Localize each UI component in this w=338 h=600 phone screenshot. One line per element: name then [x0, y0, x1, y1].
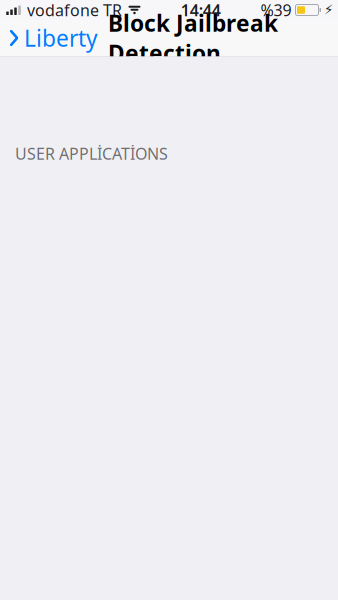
staticText: USER APPLİCATİONS [15, 143, 168, 164]
staticText: vodafone TR [27, 0, 122, 21]
staticText: Liberty [24, 23, 98, 53]
staticText: %39 [260, 0, 291, 21]
button[interactable]: Liberty [0, 17, 98, 59]
staticText: 14:44 [181, 0, 221, 21]
staticText: ⚡︎ [324, 2, 333, 17]
staticText: Block Jailbreak Detection [108, 8, 278, 68]
